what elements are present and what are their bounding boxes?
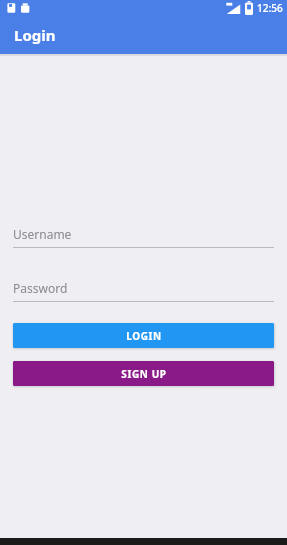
staticText: Password: [13, 280, 68, 296]
staticText: LOGIN: [126, 329, 162, 343]
staticText: Login: [14, 25, 56, 45]
button[interactable]: SIGN UP: [13, 361, 274, 386]
staticText: Username: [13, 226, 72, 242]
staticText: 12:56: [257, 1, 283, 15]
button[interactable]: LOGIN: [13, 323, 274, 348]
staticText: SIGN UP: [121, 367, 167, 381]
